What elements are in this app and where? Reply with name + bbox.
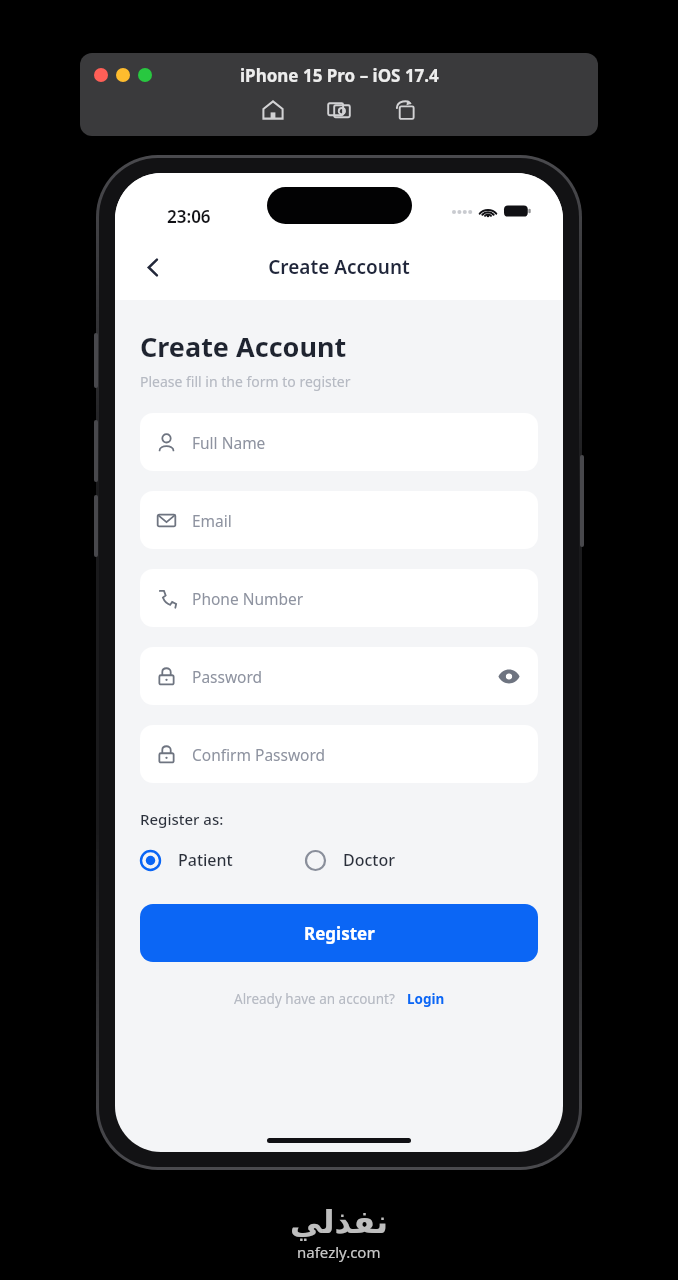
button[interactable]: Phone Number <box>140 569 538 627</box>
staticText: Full Name <box>192 432 266 453</box>
button[interactable]: Doctor <box>305 849 396 871</box>
button[interactable]: Show password <box>496 663 522 689</box>
button[interactable]: Login <box>407 990 445 1008</box>
button[interactable]: Back <box>131 245 175 289</box>
button[interactable]: Password <box>140 647 538 705</box>
button[interactable]: Home <box>261 98 285 122</box>
staticText: 23:06 <box>167 205 211 228</box>
staticText: nafezly.com <box>297 1242 381 1262</box>
staticText: نفذلي <box>290 1203 388 1240</box>
button[interactable]: Confirm Password <box>140 725 538 783</box>
staticText: Register <box>304 922 375 945</box>
button[interactable]: Rotate <box>393 98 417 122</box>
staticText: Password <box>192 666 263 687</box>
staticText: Already have an account? <box>234 990 395 1008</box>
button[interactable]: Email <box>140 491 538 549</box>
staticText: Create Account <box>140 328 347 365</box>
button[interactable]: Screenshot <box>327 98 351 122</box>
staticText: Doctor <box>343 849 396 871</box>
staticText: Email <box>192 510 232 531</box>
button[interactable]: Full Name <box>140 413 538 471</box>
staticText: Confirm Password <box>192 744 326 765</box>
staticText: Create Account <box>268 254 410 280</box>
staticText: iPhone 15 Pro – iOS 17.4 <box>240 64 439 87</box>
staticText: Login <box>407 990 445 1008</box>
staticText: Phone Number <box>192 588 304 609</box>
staticText: Register as: <box>140 809 224 829</box>
button[interactable]: Register <box>140 904 538 962</box>
button[interactable]: Patient <box>140 849 233 871</box>
staticText: Please fill in the form to register <box>140 372 351 391</box>
staticText: Patient <box>178 849 233 871</box>
